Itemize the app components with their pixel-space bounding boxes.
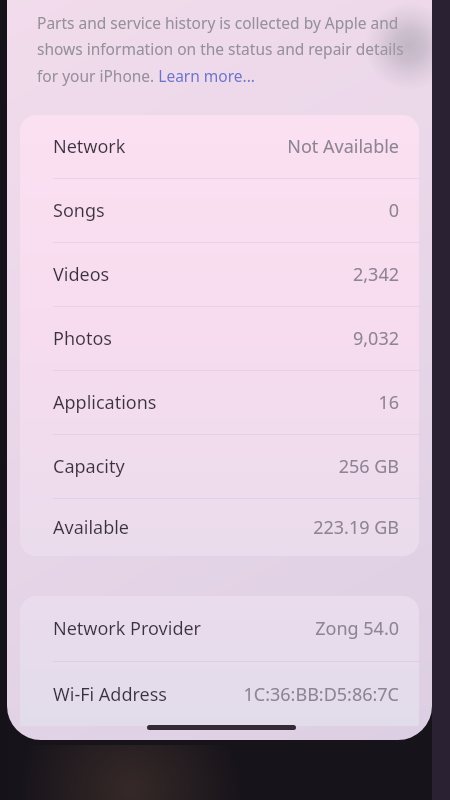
staticText: Videos: [53, 262, 110, 287]
staticText: 0: [388, 198, 399, 223]
staticText: Available: [53, 515, 129, 540]
staticText: 256 GB: [338, 454, 399, 479]
button[interactable]: Parts and service history is collected b…: [37, 12, 407, 87]
staticText: Network Provider: [53, 616, 202, 641]
button[interactable]: Wi-Fi Address: [20, 662, 419, 726]
staticText: Network: [53, 134, 126, 159]
staticText: Parts and service history is collected b…: [37, 12, 407, 87]
staticText: Not Available: [287, 134, 399, 159]
staticText: 1C:36:BB:D5:86:7C: [243, 682, 399, 707]
button[interactable]: Network Provider: [20, 596, 419, 661]
button[interactable]: Available: [20, 499, 419, 556]
staticText: 9,032: [352, 326, 399, 351]
staticText: Photos: [53, 326, 112, 351]
staticText: Capacity: [53, 454, 125, 479]
staticText: Zong 54.0: [315, 616, 399, 641]
staticText: 223.19 GB: [313, 515, 399, 540]
staticText: Applications: [53, 390, 157, 415]
staticText: 2,342: [352, 262, 399, 287]
button[interactable]: Capacity: [20, 435, 419, 498]
staticText: Songs: [53, 198, 105, 223]
button[interactable]: Network: [20, 115, 419, 178]
button[interactable]: Songs: [20, 179, 419, 242]
button[interactable]: Photos: [20, 307, 419, 370]
staticText: Wi-Fi Address: [53, 682, 167, 707]
button[interactable]: Videos: [20, 243, 419, 306]
button[interactable]: Applications: [20, 371, 419, 434]
staticText: 16: [378, 390, 399, 415]
